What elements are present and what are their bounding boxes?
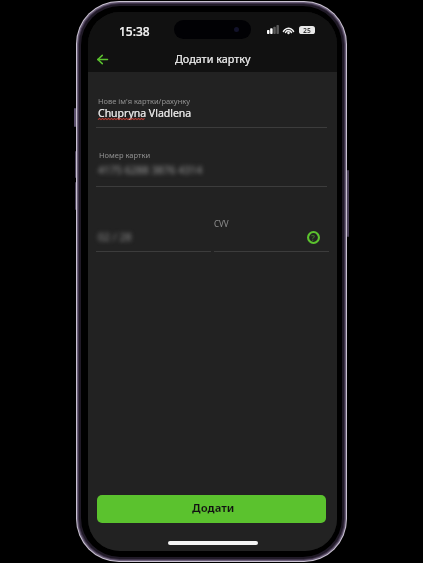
staticText: Додати [192,500,235,515]
staticText: Номер картки [99,150,151,160]
staticText: 02 / 28 [98,230,132,244]
staticText: Нове ім'я картки/рахунку [98,96,191,106]
staticText: Додати картку [175,51,251,66]
staticText: CVV [214,218,229,229]
staticText: Chupryna Vladlena [98,106,192,120]
button[interactable]: CVV help [305,229,321,245]
button[interactable]: Back [90,47,115,72]
staticText: 15:38 [119,23,150,39]
staticText: 4175 6288 3876 4314 [98,163,203,177]
button[interactable]: Додати [97,495,326,523]
staticText: 25 [303,26,311,34]
staticText: ? [311,232,316,244]
